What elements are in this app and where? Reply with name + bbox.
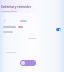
staticText: Sedentary reminder: [1, 5, 32, 9]
button[interactable]: Toggle: [56, 28, 61, 31]
button[interactable]: Add reminder: [20, 60, 36, 66]
